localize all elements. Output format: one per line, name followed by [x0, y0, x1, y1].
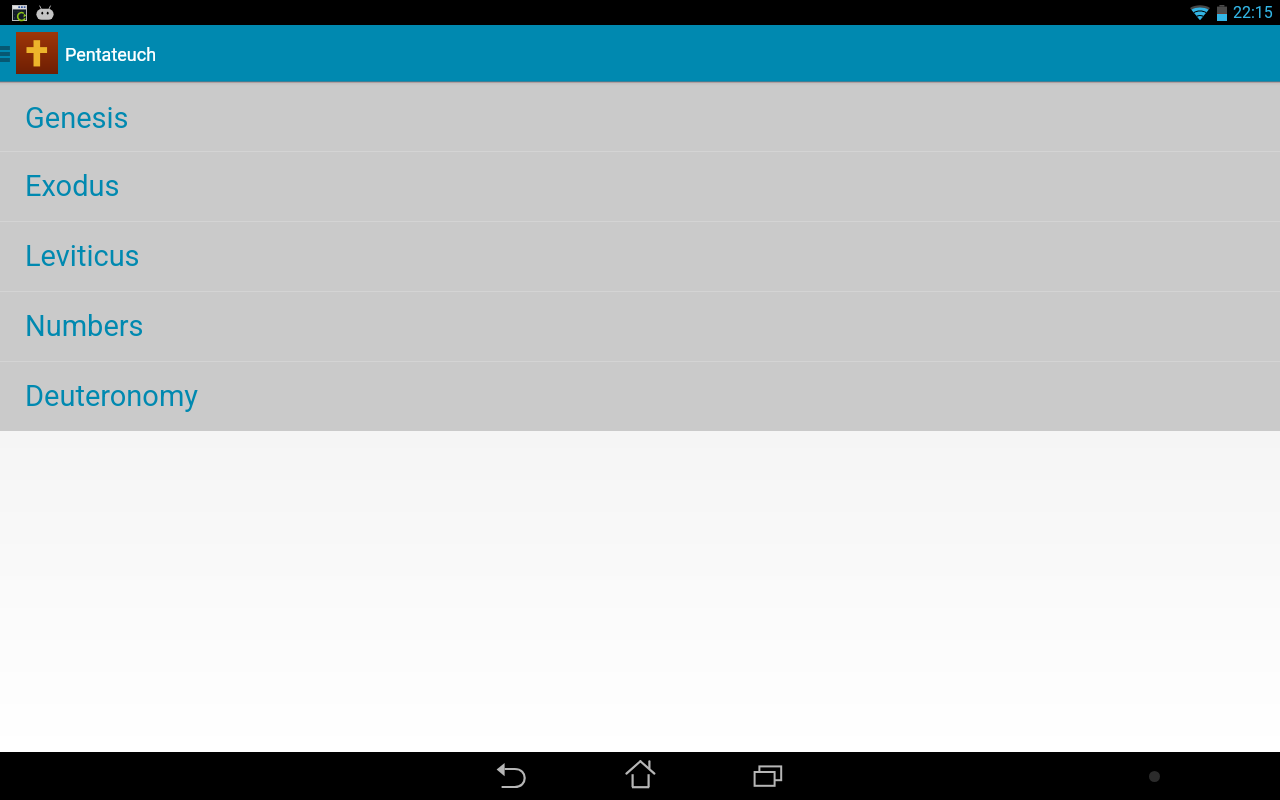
staticText: 22:15 [1233, 3, 1273, 22]
button[interactable]: Home [576, 752, 704, 800]
staticText: Numbers [25, 309, 144, 343]
staticText: Genesis [25, 101, 129, 135]
button[interactable]: Deuteronomy [0, 361, 1280, 431]
button[interactable]: Pentateuch [16, 25, 173, 81]
button[interactable]: Numbers [0, 291, 1280, 361]
staticText: Pentateuch [65, 44, 157, 65]
staticText: Deuteronomy [25, 379, 199, 413]
button[interactable]: Back [448, 752, 576, 800]
staticText: Leviticus [25, 239, 140, 273]
button[interactable]: Open navigation drawer [0, 25, 16, 81]
button[interactable]: Exodus [0, 151, 1280, 221]
button[interactable]: Leviticus [0, 221, 1280, 291]
staticText: Exodus [25, 169, 120, 203]
button[interactable]: Genesis [0, 86, 1280, 151]
button[interactable]: Recent apps [704, 752, 832, 800]
